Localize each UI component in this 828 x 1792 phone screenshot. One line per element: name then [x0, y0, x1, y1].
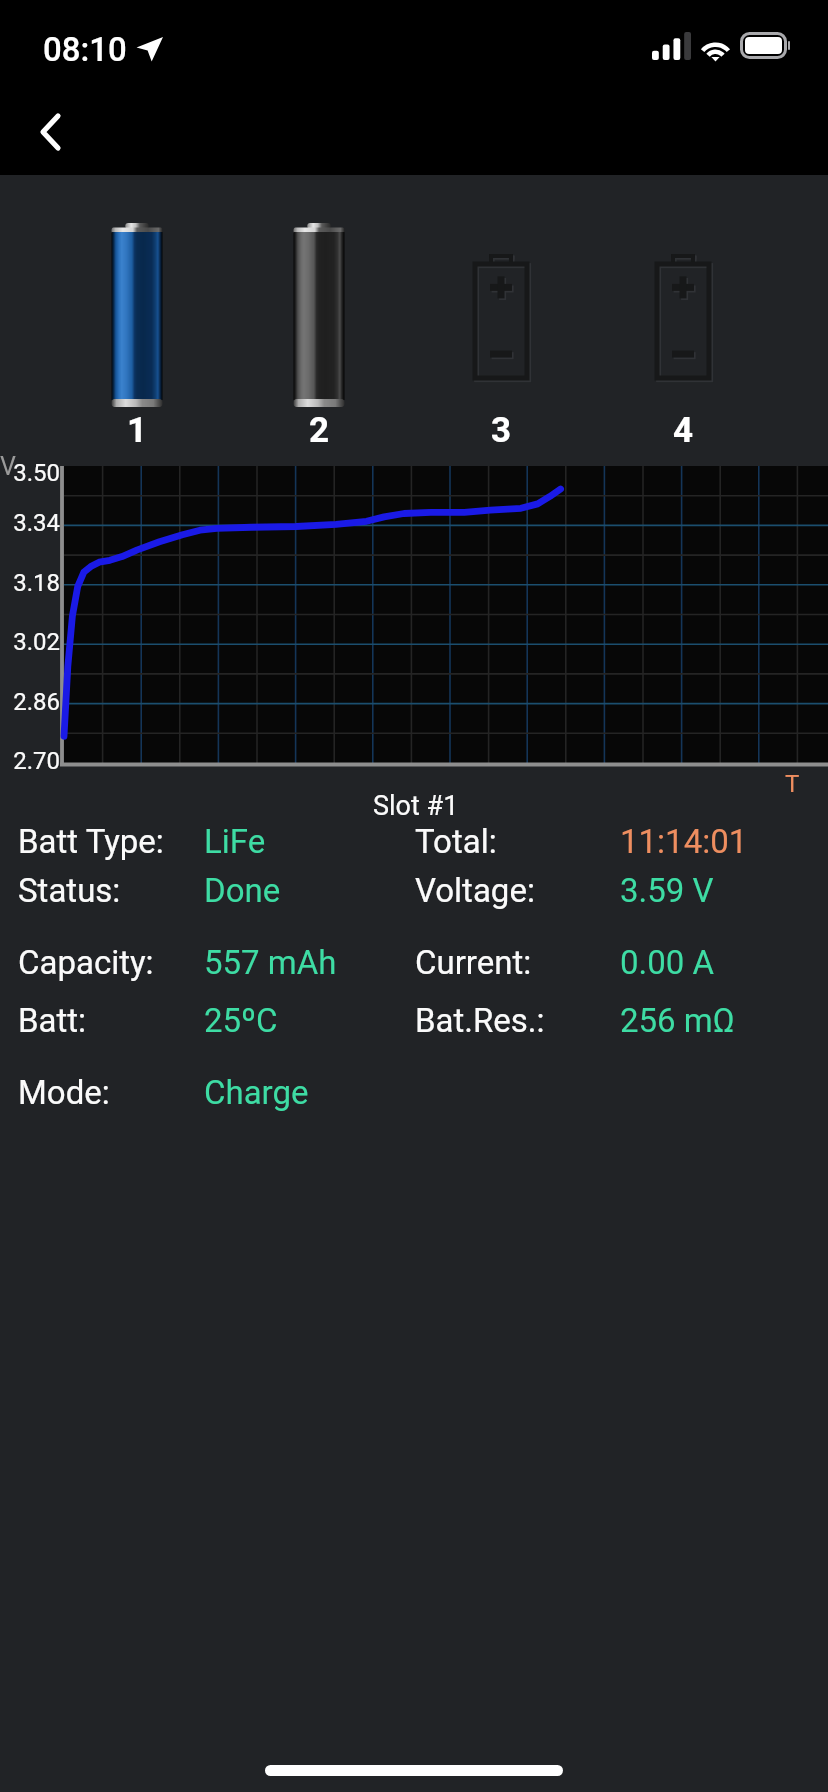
- staticText: 2.86: [4, 688, 60, 716]
- button[interactable]: Status:: [0, 870, 828, 914]
- button[interactable]: 3: [409, 196, 593, 452]
- button[interactable]: Batt:: [0, 1000, 828, 1044]
- staticText: LiFe: [204, 822, 266, 861]
- staticText: Current:: [415, 943, 532, 982]
- staticText: 2: [309, 410, 330, 451]
- button[interactable]: 2: [227, 196, 411, 452]
- staticText: Charge: [204, 1073, 309, 1112]
- staticText: Done: [204, 871, 281, 910]
- staticText: Mode:: [18, 1073, 110, 1112]
- staticText: 3.34: [4, 509, 60, 537]
- staticText: Voltage:: [415, 871, 535, 910]
- staticText: Batt Type:: [18, 822, 164, 861]
- button[interactable]: Batt Type:: [0, 821, 828, 865]
- staticText: 11:14:01: [620, 822, 748, 861]
- button[interactable]: 1: [45, 196, 229, 452]
- staticText: Status:: [18, 871, 121, 910]
- staticText: 256 mΩ: [620, 1001, 735, 1040]
- staticText: Bat.Res.:: [415, 1001, 545, 1040]
- staticText: 4: [673, 410, 694, 451]
- button[interactable]: Capacity:: [0, 942, 828, 986]
- staticText: Slot #1: [373, 790, 459, 822]
- staticText: 08:10: [43, 30, 127, 69]
- staticText: 2.70: [4, 747, 60, 775]
- staticText: 0.00 A: [620, 943, 715, 982]
- staticText: 3: [491, 410, 512, 451]
- button[interactable]: 4: [591, 196, 775, 452]
- staticText: Batt:: [18, 1001, 87, 1040]
- staticText: 1: [127, 410, 148, 451]
- staticText: 3.59 V: [620, 871, 714, 910]
- staticText: 3.50: [4, 459, 60, 487]
- staticText: 25ºC: [204, 1001, 278, 1040]
- staticText: 3.18: [4, 569, 60, 597]
- staticText: T: [785, 770, 800, 798]
- staticText: Total:: [415, 822, 497, 861]
- staticText: Capacity:: [18, 943, 154, 982]
- staticText: V: [0, 452, 16, 481]
- button[interactable]: Back: [12, 98, 70, 156]
- button[interactable]: Mode:: [0, 1072, 828, 1116]
- staticText: 557 mAh: [204, 943, 337, 982]
- staticText: 3.02: [4, 628, 60, 656]
